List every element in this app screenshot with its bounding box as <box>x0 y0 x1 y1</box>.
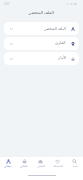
button[interactable]: حسابي <box>0 159 16 167</box>
button[interactable]: المتجر <box>32 159 49 167</box>
staticText: طلباتي <box>20 164 28 167</box>
staticText: العناوين <box>55 41 66 45</box>
staticText: الملف الشخصي <box>44 26 66 30</box>
staticText: 9:41 <box>4 2 10 6</box>
button[interactable]: الأمان <box>4 52 79 65</box>
staticText: الملف الشخصي <box>28 10 54 15</box>
button[interactable]: العناوين <box>4 37 79 50</box>
button[interactable]: بحث <box>66 159 83 167</box>
button[interactable]: المفضلة <box>49 159 66 167</box>
staticText: المتجر <box>37 164 45 167</box>
button[interactable]: طلباتي <box>16 159 32 167</box>
staticText: حسابي <box>4 164 12 167</box>
staticText: بحث <box>72 164 78 167</box>
button[interactable]: الملف الشخصي <box>4 22 79 35</box>
staticText: الأمان <box>58 56 66 60</box>
staticText: المفضلة <box>53 164 63 167</box>
